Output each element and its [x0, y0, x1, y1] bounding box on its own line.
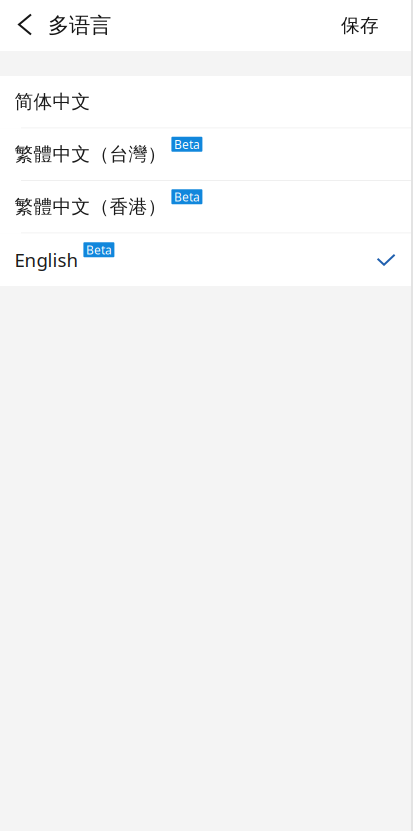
button[interactable]: 繁體中文（台灣）	[0, 128, 413, 181]
staticText: Beta	[174, 136, 200, 152]
button[interactable]: Back	[0, 0, 36, 51]
staticText: Beta	[174, 189, 200, 205]
staticText: 简体中文	[14, 90, 90, 113]
button[interactable]: English	[0, 233, 413, 286]
staticText: 繁體中文（香港）	[14, 195, 166, 218]
button[interactable]: 繁體中文（香港）	[0, 181, 413, 233]
button[interactable]: 简体中文	[0, 76, 413, 128]
staticText: 保存	[341, 14, 379, 37]
staticText: Beta	[86, 242, 112, 258]
staticText: English	[14, 247, 78, 272]
button[interactable]: 保存	[321, 0, 413, 51]
staticText: 繁體中文（台灣）	[14, 143, 166, 166]
staticText: 多语言	[48, 12, 111, 39]
